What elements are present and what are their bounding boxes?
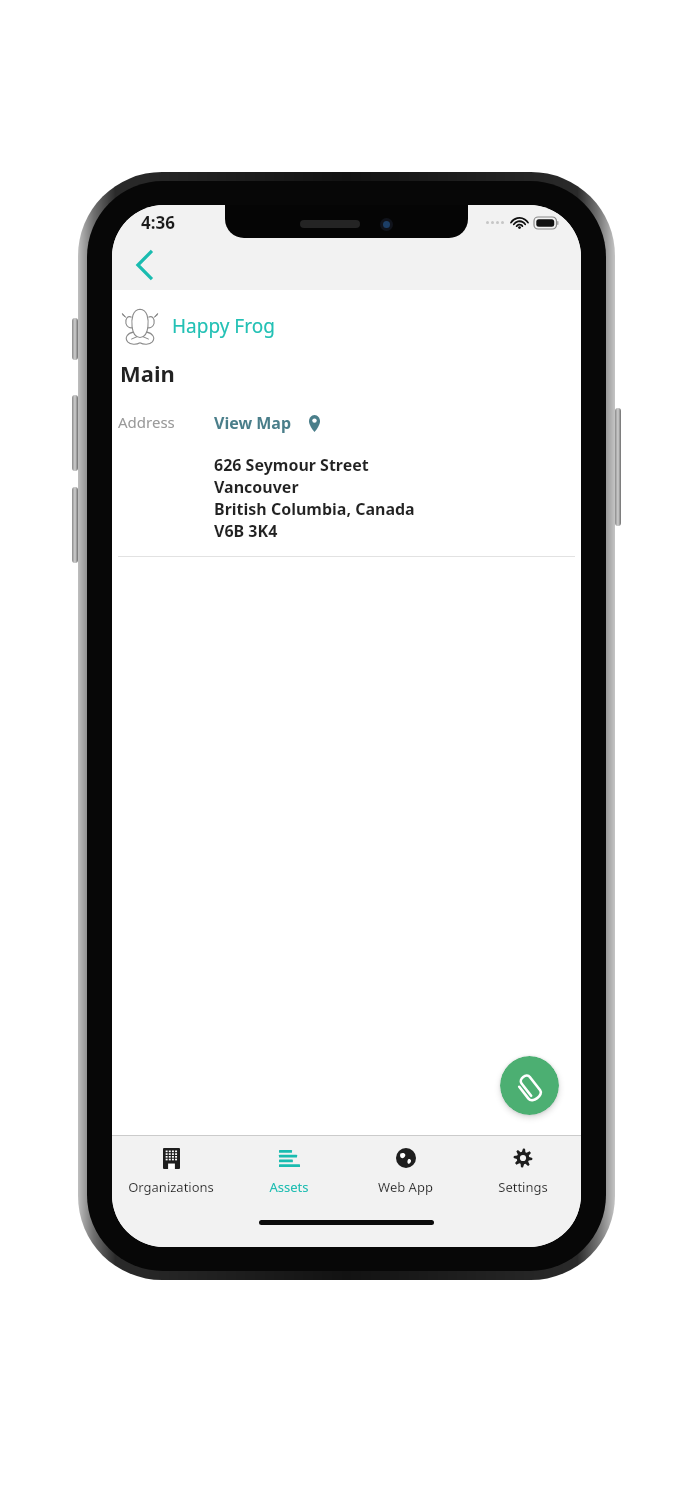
staticText: V6B 3K4 — [214, 520, 278, 542]
staticText: Happy Frog — [172, 313, 275, 339]
staticText: Address — [118, 412, 214, 432]
button[interactable]: Happy Frog — [118, 304, 581, 348]
staticText: Web App — [378, 1178, 433, 1196]
button[interactable]: View Map — [214, 412, 321, 434]
button[interactable]: Add attachment — [500, 1056, 559, 1115]
button[interactable]: Back — [122, 243, 166, 287]
staticText: Organizations — [128, 1178, 214, 1196]
staticText: Vancouver — [214, 476, 299, 498]
staticText: 4:36 — [141, 211, 175, 234]
staticText: Settings — [498, 1178, 548, 1196]
staticText: 626 Seymour Street — [214, 454, 369, 476]
button[interactable]: Settings — [464, 1136, 581, 1196]
button[interactable]: Web App — [347, 1136, 464, 1196]
staticText: View Map — [214, 412, 292, 434]
staticText: British Columbia, Canada — [214, 498, 415, 520]
staticText: Main — [120, 358, 175, 388]
staticText: Assets — [269, 1178, 309, 1196]
button[interactable]: Assets — [230, 1136, 347, 1196]
button[interactable]: Organizations — [112, 1136, 230, 1196]
